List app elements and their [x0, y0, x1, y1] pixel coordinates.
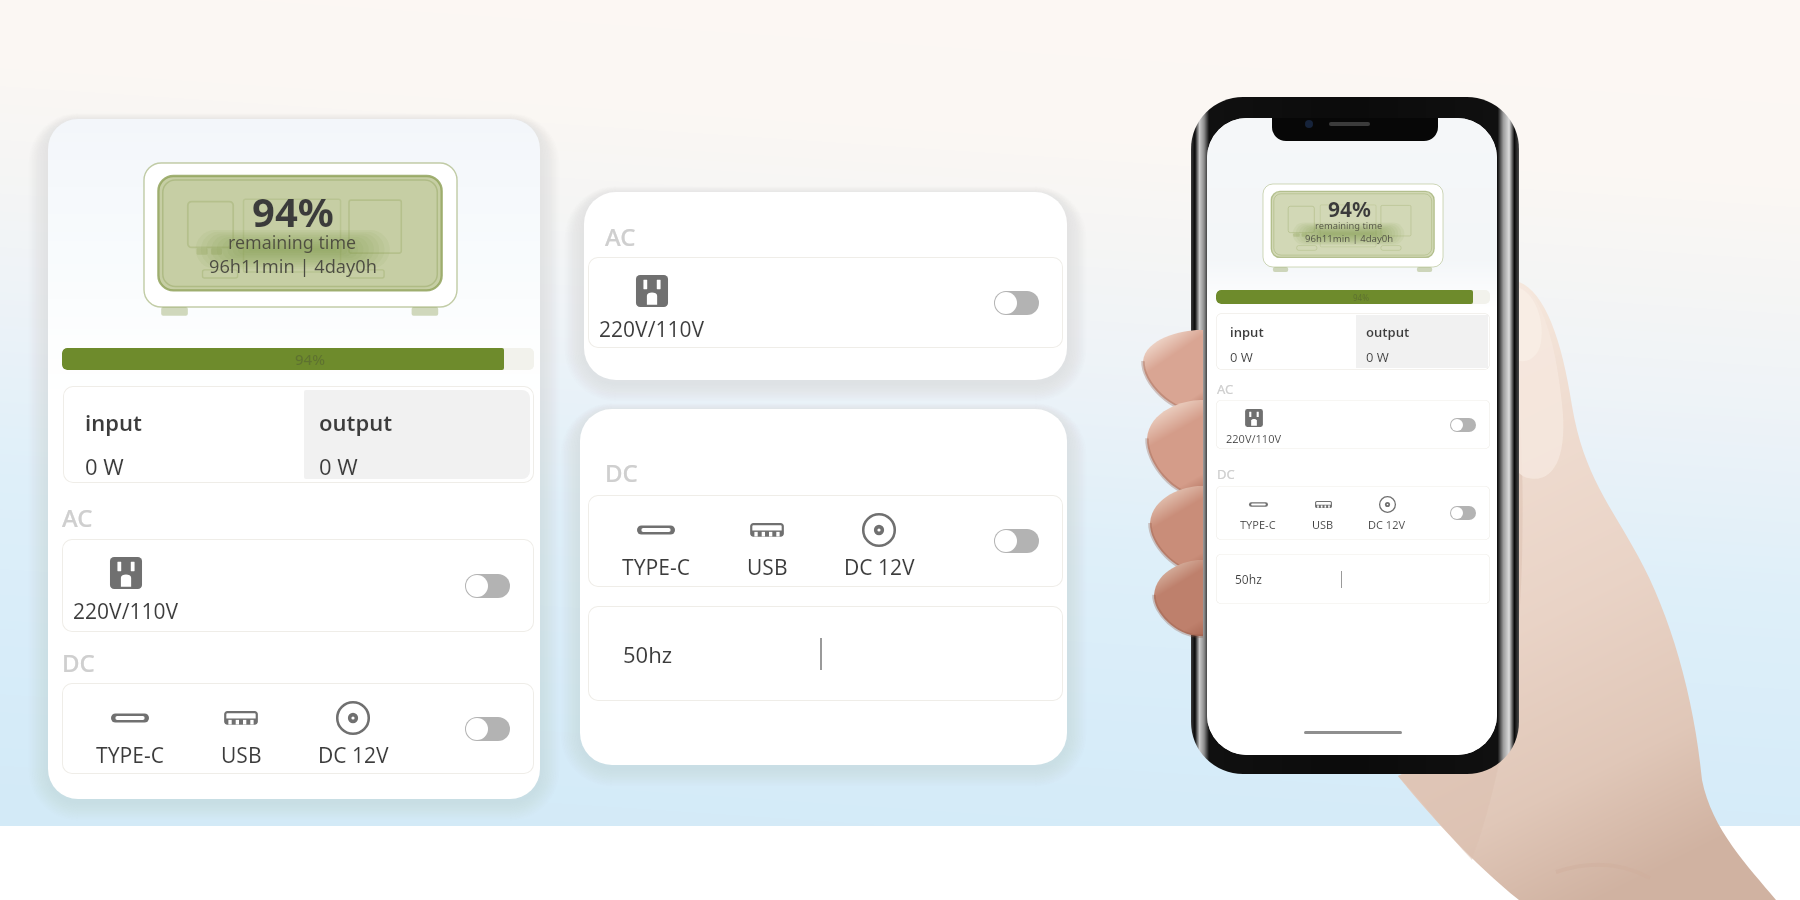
staticText: TYPE-C [1240, 517, 1276, 532]
staticText: 94% [1328, 195, 1371, 224]
button[interactable]: Power toggle [1450, 418, 1476, 432]
staticText: remaining time [1315, 219, 1383, 232]
staticText: 220V/110V [73, 597, 179, 626]
staticText: 96h11min | 4day0h [209, 254, 377, 279]
staticText: DC 12V [1368, 517, 1406, 532]
staticText: DC 12V [318, 741, 389, 770]
button[interactable]: Power toggle [465, 717, 510, 741]
staticText: remaining time [228, 230, 357, 254]
staticText: 94% [1353, 292, 1369, 303]
button[interactable]: Power toggle [465, 574, 510, 598]
staticText: 0 W [1230, 348, 1253, 366]
button[interactable]: Power toggle [994, 291, 1039, 315]
staticText: USB [1312, 517, 1334, 532]
staticText: 220V/110V [599, 315, 705, 344]
staticText: TYPE-C [96, 741, 164, 770]
staticText: input [1230, 323, 1264, 341]
staticText: USB [221, 741, 262, 770]
staticText: 50hz [623, 639, 673, 669]
staticText: DC [1217, 465, 1235, 483]
staticText: 50hz [1235, 571, 1262, 587]
button[interactable]: TYPE-C [588, 495, 1063, 587]
button[interactable]: TYPE-C [1216, 486, 1490, 540]
staticText: 0 W [1366, 348, 1389, 366]
staticText: output [319, 407, 393, 437]
staticText: 220V/110V [1226, 431, 1282, 446]
staticText: 94% [252, 184, 334, 238]
staticText: input [85, 407, 143, 437]
button[interactable]: Power toggle [1450, 506, 1476, 520]
staticText: 96h11min | 4day0h [1305, 232, 1394, 245]
staticText: AC [1217, 380, 1234, 398]
staticText: AC [605, 220, 636, 253]
staticText: output [1366, 323, 1410, 341]
button[interactable]: 50hz [1216, 554, 1490, 604]
staticText: 0 W [85, 451, 124, 481]
staticText: USB [747, 553, 788, 582]
staticText: TYPE-C [622, 553, 690, 582]
button[interactable]: 50hz [588, 606, 1063, 701]
button[interactable]: Power toggle [994, 529, 1039, 553]
staticText: DC 12V [844, 553, 915, 582]
staticText: 94% [295, 349, 325, 369]
button[interactable]: 220V/110V [62, 539, 534, 632]
button[interactable]: 220V/110V [588, 257, 1063, 348]
button[interactable]: TYPE-C [62, 683, 534, 774]
staticText: AC [62, 501, 93, 534]
staticText: DC [62, 646, 95, 679]
button[interactable]: 220V/110V [1216, 400, 1490, 449]
staticText: DC [605, 456, 638, 489]
staticText: 0 W [319, 451, 358, 481]
